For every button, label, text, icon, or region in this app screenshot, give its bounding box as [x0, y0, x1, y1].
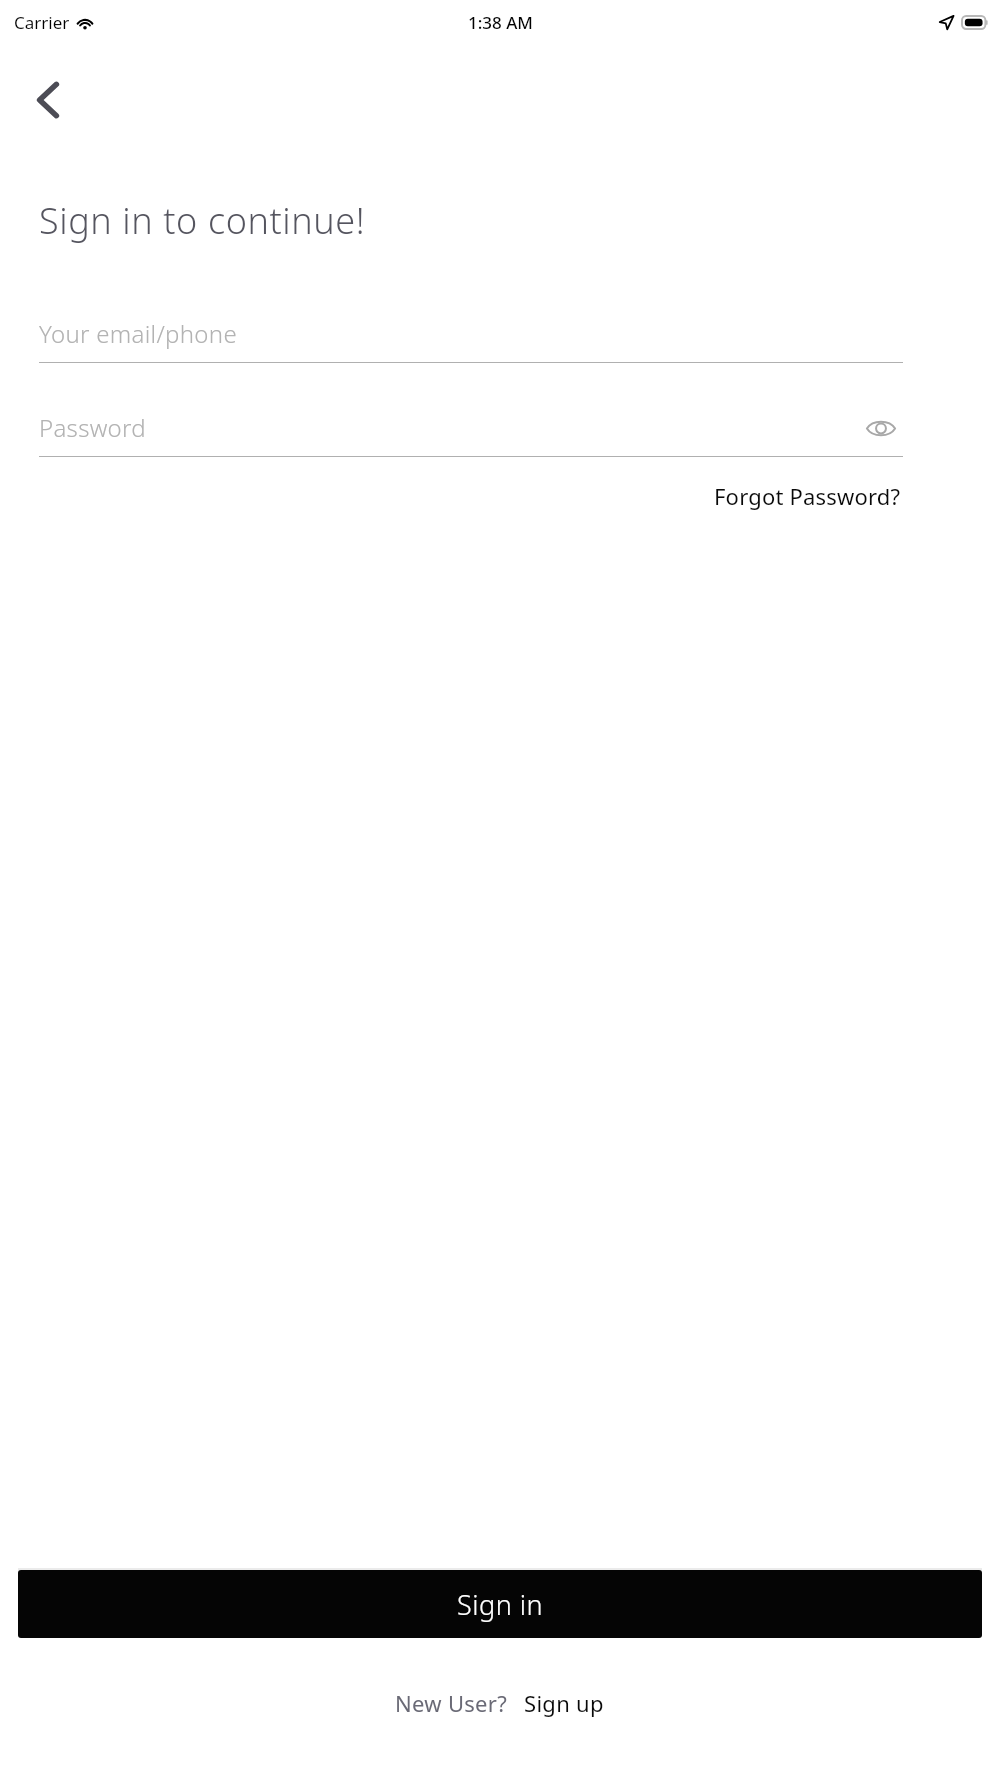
button[interactable]: Show password: [859, 406, 903, 450]
staticText: Sign up: [524, 1688, 604, 1718]
staticText: 1:38 AM: [468, 11, 533, 34]
button[interactable]: Forgot Password?: [712, 477, 903, 515]
button[interactable]: Your email/phone: [39, 305, 903, 363]
staticText: Sign in to continue!: [39, 196, 366, 245]
staticText: Forgot Password?: [714, 481, 901, 511]
button[interactable]: Sign up: [522, 1684, 606, 1722]
staticText: Carrier: [14, 11, 70, 34]
staticText: New User?: [395, 1688, 508, 1718]
button[interactable]: Back: [20, 72, 76, 128]
button[interactable]: Sign in: [18, 1570, 982, 1638]
staticText: Your email/phone: [39, 317, 237, 350]
staticText: Sign in: [457, 1586, 544, 1623]
staticText: Password: [39, 411, 147, 444]
button[interactable]: Password: [39, 399, 903, 457]
